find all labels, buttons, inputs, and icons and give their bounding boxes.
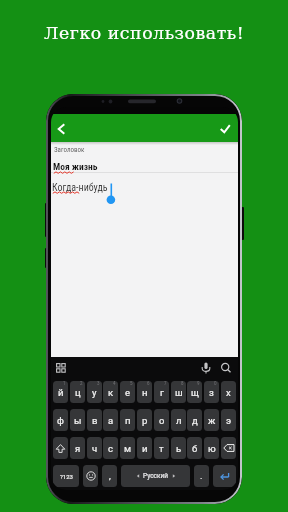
staticText: 2 xyxy=(80,381,83,386)
staticText: я xyxy=(75,443,81,454)
staticText: ж xyxy=(208,415,216,426)
button[interactable] xyxy=(221,437,236,459)
button[interactable]: к xyxy=(103,381,118,403)
button[interactable] xyxy=(53,437,68,459)
button[interactable]: а xyxy=(103,409,118,431)
staticText: й xyxy=(58,387,64,398)
button[interactable] xyxy=(83,465,98,487)
button[interactable]: ч xyxy=(87,437,102,459)
staticText: д xyxy=(192,415,198,426)
staticText: . xyxy=(200,471,203,482)
staticText: б xyxy=(192,443,198,454)
staticText: 9 xyxy=(197,381,200,386)
button[interactable]: л xyxy=(171,409,186,431)
button[interactable]: ф xyxy=(53,409,68,431)
staticText: х xyxy=(226,387,231,398)
button[interactable]: , xyxy=(102,465,117,487)
button[interactable]: я xyxy=(70,437,85,459)
button[interactable]: у xyxy=(87,381,102,403)
button[interactable]: д xyxy=(187,409,202,431)
button[interactable]: ю xyxy=(204,437,219,459)
button[interactable] xyxy=(52,117,76,141)
staticText: о xyxy=(159,415,165,426)
staticText: , xyxy=(109,471,111,482)
button[interactable] xyxy=(219,361,234,376)
button[interactable]: е xyxy=(120,381,135,403)
staticText: Легко использовать! xyxy=(44,23,245,43)
staticText: 7 xyxy=(164,381,167,386)
staticText: а xyxy=(108,415,114,426)
staticText: 1 xyxy=(63,381,66,386)
button[interactable]: т xyxy=(154,437,169,459)
staticText: Русский xyxy=(143,472,169,480)
staticText: ь xyxy=(176,443,182,454)
button[interactable]: Русский xyxy=(121,465,190,487)
staticText: 0 xyxy=(214,381,217,386)
staticText: к xyxy=(108,387,114,398)
staticText: 8 xyxy=(181,381,184,386)
button[interactable]: . xyxy=(194,465,209,487)
button[interactable] xyxy=(213,117,237,141)
button[interactable] xyxy=(213,465,236,487)
staticText: ц xyxy=(75,387,81,398)
button[interactable] xyxy=(55,362,67,374)
staticText: 5 xyxy=(130,381,133,386)
button[interactable]: и xyxy=(137,437,152,459)
staticText: э xyxy=(226,415,232,426)
staticText: м xyxy=(124,443,132,454)
staticText: ш xyxy=(175,387,183,398)
button[interactable]: р xyxy=(137,409,152,431)
button[interactable]: щ xyxy=(187,381,202,403)
staticText: Моя жизнь xyxy=(53,161,98,172)
staticText: 4 xyxy=(113,381,116,386)
button[interactable]: ?123 xyxy=(53,465,79,487)
staticText: п xyxy=(125,415,131,426)
staticText: е xyxy=(125,387,131,398)
staticText: н xyxy=(142,387,148,398)
staticText: ?123 xyxy=(60,473,73,480)
staticText: 3 xyxy=(97,381,100,386)
button[interactable]: й xyxy=(53,381,68,403)
button[interactable]: ш xyxy=(171,381,186,403)
button[interactable]: о xyxy=(154,409,169,431)
button[interactable]: ж xyxy=(204,409,219,431)
staticText: с xyxy=(108,443,113,454)
button[interactable]: м xyxy=(120,437,135,459)
button[interactable]: э xyxy=(221,409,236,431)
staticText: ы xyxy=(74,415,82,426)
staticText: ф xyxy=(57,415,64,426)
button[interactable]: с xyxy=(103,437,118,459)
button[interactable]: з xyxy=(204,381,219,403)
button[interactable]: в xyxy=(87,409,102,431)
button[interactable]: ц xyxy=(70,381,85,403)
staticText: л xyxy=(176,415,182,426)
staticText: Когда-нибудь xyxy=(52,182,108,194)
button[interactable]: х xyxy=(221,381,236,403)
staticText: в xyxy=(92,415,98,426)
staticText: у xyxy=(92,387,97,398)
button[interactable]: ь xyxy=(171,437,186,459)
staticText: ч xyxy=(92,443,98,454)
staticText: г xyxy=(160,387,164,398)
staticText: р xyxy=(142,415,148,426)
staticText: и xyxy=(142,443,148,454)
button[interactable]: п xyxy=(120,409,135,431)
staticText: Заголовок xyxy=(54,146,85,154)
staticText: ю xyxy=(208,443,216,454)
button[interactable]: г xyxy=(154,381,169,403)
button[interactable]: ы xyxy=(70,409,85,431)
button[interactable]: б xyxy=(187,437,202,459)
button[interactable]: н xyxy=(137,381,152,403)
staticText: т xyxy=(159,443,164,454)
staticText: 6 xyxy=(147,381,150,386)
staticText: щ xyxy=(191,387,199,398)
button[interactable] xyxy=(199,361,213,376)
staticText: з xyxy=(209,387,214,398)
